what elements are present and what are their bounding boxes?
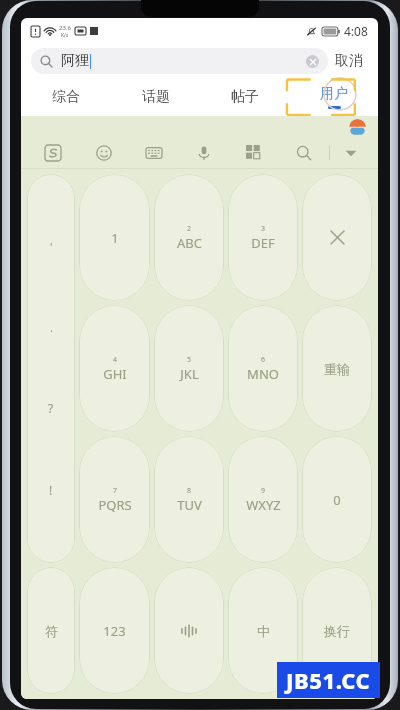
button[interactable]: 7	[79, 436, 150, 563]
staticText: 7	[113, 486, 118, 496]
staticText: ?	[48, 400, 54, 416]
staticText: 1	[111, 229, 119, 247]
staticText: 符	[45, 623, 58, 639]
button[interactable]: 123	[79, 567, 150, 694]
staticText: GHI	[103, 365, 127, 383]
button[interactable]: 用户	[289, 78, 378, 116]
button[interactable]: Search	[279, 138, 329, 168]
staticText: 用户	[320, 85, 348, 103]
button[interactable]: Account	[349, 119, 366, 136]
button[interactable]: Voice input	[179, 138, 229, 168]
staticText: TUV	[177, 496, 202, 514]
button[interactable]: 9	[228, 436, 298, 563]
staticText: 帖子	[231, 88, 259, 106]
staticText: 中	[257, 623, 270, 639]
staticText: JKL	[180, 365, 199, 383]
button[interactable]: 2	[154, 174, 224, 301]
button[interactable]: 重输	[302, 305, 372, 432]
staticText: !	[49, 482, 53, 498]
staticText: 6	[261, 355, 266, 365]
staticText: 23.6	[59, 24, 71, 32]
button[interactable]: 5	[154, 305, 224, 432]
button[interactable]: 换行	[302, 567, 372, 694]
button[interactable]: 符	[27, 567, 75, 694]
staticText: PQRS	[98, 496, 132, 514]
staticText: 8	[187, 486, 192, 496]
staticText: JB51.CC	[286, 665, 371, 695]
staticText: 3	[261, 224, 266, 234]
button[interactable]: 中	[228, 567, 298, 694]
staticText: WXYZ	[246, 496, 281, 514]
staticText: ABC	[177, 234, 202, 252]
staticText: K/s	[61, 32, 69, 39]
button[interactable]: 3	[228, 174, 298, 301]
staticText: DEF	[251, 234, 275, 252]
staticText: 9	[261, 486, 266, 496]
staticText: 0	[333, 491, 341, 509]
staticText: 5	[187, 355, 192, 365]
staticText: 综合	[52, 88, 80, 106]
button[interactable]: '	[27, 174, 75, 563]
staticText: MNO	[247, 365, 279, 383]
staticText: .	[50, 320, 53, 335]
button[interactable]: 阿狸	[31, 48, 328, 74]
button[interactable]: Hide keyboard	[330, 138, 372, 168]
staticText: 取消	[335, 52, 363, 70]
button[interactable]: 1	[79, 174, 150, 301]
staticText: 阿狸	[61, 52, 89, 70]
staticText: '	[50, 239, 53, 254]
button[interactable]: 4	[79, 305, 150, 432]
button[interactable]: 话题	[111, 78, 200, 116]
staticText: 话题	[142, 88, 170, 106]
button[interactable]: 取消	[328, 48, 370, 74]
staticText: 4:08	[344, 23, 368, 39]
button[interactable]: Emoji	[78, 138, 129, 168]
staticText: 4	[113, 355, 118, 365]
button[interactable]: Sogou	[27, 138, 78, 168]
staticText: 重输	[324, 361, 350, 377]
button[interactable]: 8	[154, 436, 224, 563]
staticText: 换行	[324, 623, 350, 639]
button[interactable]: More apps	[229, 138, 279, 168]
staticText: 2	[187, 224, 192, 234]
button[interactable]: Keyboard layout	[129, 138, 179, 168]
button[interactable]	[154, 567, 224, 694]
button[interactable]: 综合	[21, 78, 111, 116]
button[interactable]: 帖子	[200, 78, 289, 116]
button[interactable]: 0	[302, 436, 372, 563]
button[interactable]	[302, 174, 372, 301]
staticText: 123	[103, 622, 126, 640]
button[interactable]: Clear	[306, 55, 319, 68]
button[interactable]: 6	[228, 305, 298, 432]
